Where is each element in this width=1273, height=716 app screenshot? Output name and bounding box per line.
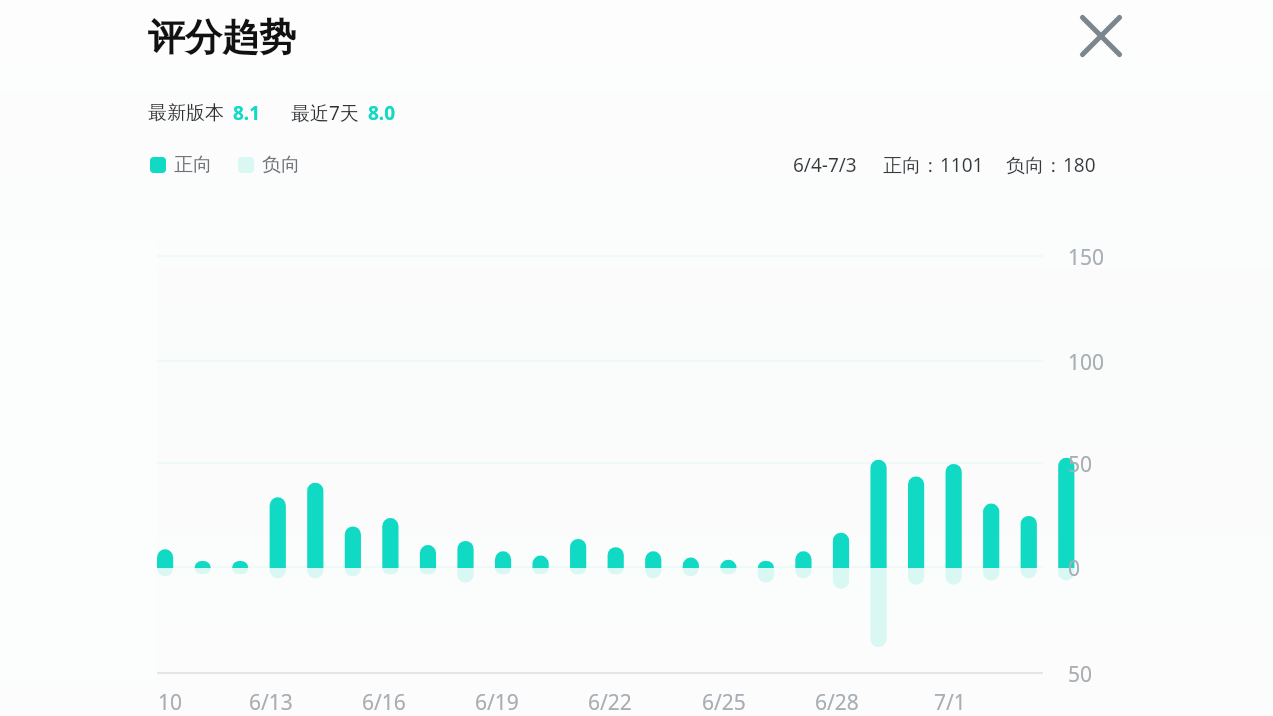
staticText: 6/16 [362,688,406,716]
staticText: 6/13 [249,688,293,716]
staticText: 50 [1068,450,1093,479]
staticText: 正向 [174,153,212,177]
staticText: 负向 [262,153,300,177]
staticText: 100 [1068,348,1105,377]
staticText: 10 [158,688,183,716]
staticText: 最近7天 [291,100,359,126]
staticText: 6/22 [588,688,632,716]
staticText: 8.0 [368,100,396,126]
staticText: 最新版本 [148,101,224,125]
staticText: 6/19 [475,688,519,716]
staticText: 6/4-7/3 [793,152,857,178]
staticText: 评分趋势 [148,14,296,61]
button[interactable]: Close [1077,12,1125,60]
staticText: 6/28 [815,688,859,716]
staticText: 正向：1101 [883,152,984,178]
staticText: 0 [1068,554,1081,583]
staticText: 50 [1068,660,1093,689]
staticText: 负向：180 [1006,152,1096,178]
staticText: 150 [1068,243,1105,272]
staticText: 6/25 [702,688,746,716]
staticText: 8.1 [233,100,261,126]
staticText: 7/1 [934,688,966,716]
